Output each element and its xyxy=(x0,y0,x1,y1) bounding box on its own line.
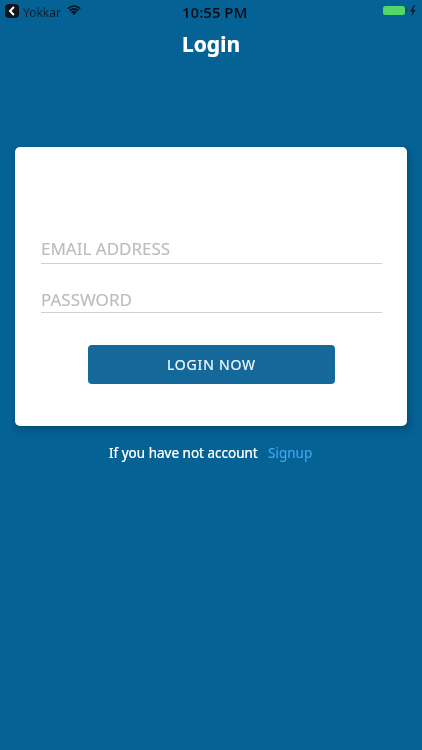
staticText: If you have not account xyxy=(109,444,258,462)
staticText: Yokkar xyxy=(23,4,61,20)
staticText: 10:55 PM xyxy=(182,2,248,22)
staticText: EMAIL ADDRESS xyxy=(41,237,171,260)
staticText: Login xyxy=(182,30,241,59)
staticText: LOGIN NOW xyxy=(167,355,256,374)
button[interactable] xyxy=(5,4,19,18)
button[interactable]: Signup xyxy=(268,444,313,462)
button[interactable]: LOGIN NOW xyxy=(88,345,335,384)
staticText: PASSWORD xyxy=(41,288,132,311)
staticText: Signup xyxy=(268,444,313,462)
